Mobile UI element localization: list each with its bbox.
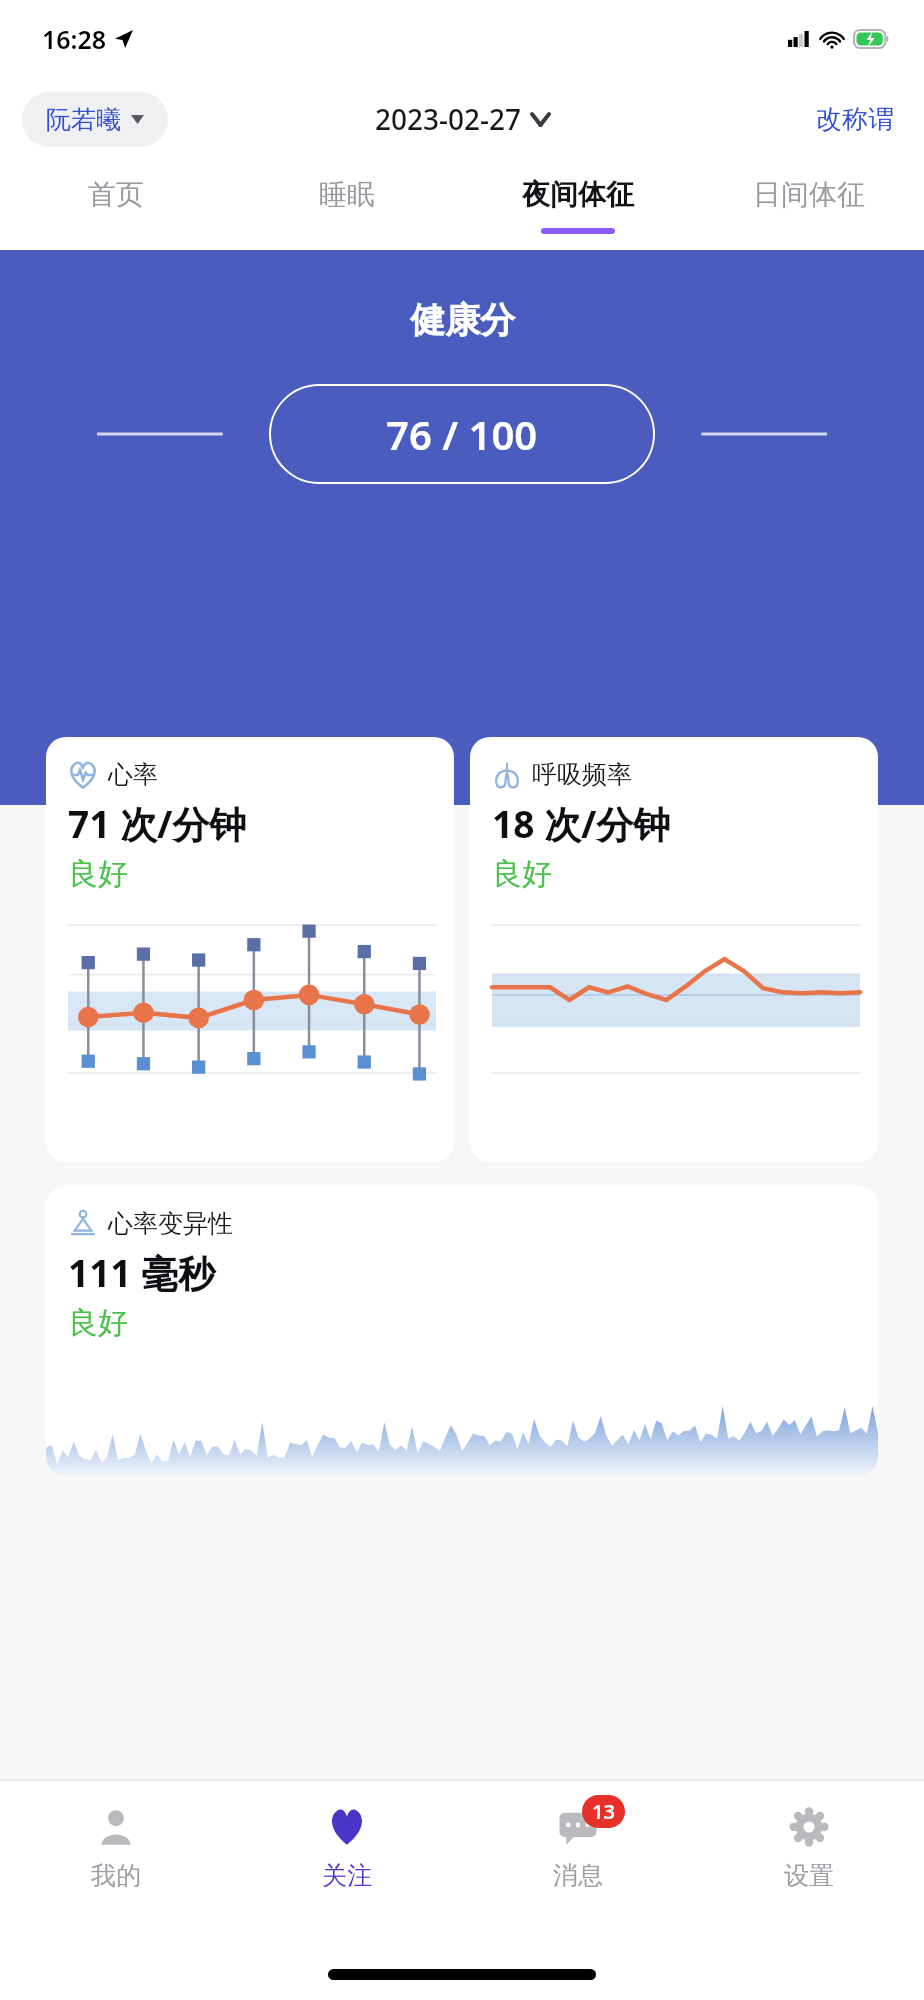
other: 消息 [557,1806,599,1848]
other: 我的 [95,1806,137,1848]
other: 关注 [326,1806,368,1848]
button[interactable]: 心率变异性 [46,1186,878,1476]
button[interactable]: 消息 [462,1780,693,1948]
staticText: 心率 [108,759,158,790]
staticText: 首页 [88,177,144,212]
button[interactable]: 阮若曦 [22,92,168,147]
staticText: 日间体征 [753,177,865,212]
staticText: 健康分 [410,298,515,342]
button[interactable]: 76 / 100 [269,384,655,484]
staticText: 良好 [68,855,128,893]
staticText: 我的 [91,1860,141,1891]
staticText: 2023-02-27 [375,100,522,138]
button[interactable]: 呼吸频率 [470,737,878,1162]
staticText: 71 次/分钟 [68,798,247,849]
button[interactable]: 夜间体征 [462,160,693,250]
button[interactable]: 首页 [0,160,231,250]
staticText: 呼吸频率 [532,759,632,790]
button[interactable]: 关注 [231,1780,462,1948]
button[interactable]: 我的 [0,1780,231,1948]
button[interactable]: 改称谓 [804,93,906,146]
staticText: 关注 [322,1860,372,1891]
staticText: 睡眠 [319,177,375,212]
button[interactable]: 2023-02-27 [365,92,559,146]
staticText: 13 [592,1798,615,1825]
staticText: 111 毫秒 [68,1247,216,1298]
other: 设置 [788,1806,830,1848]
staticText: 76 / 100 [386,407,538,461]
button[interactable]: 心率 [46,737,454,1162]
button[interactable]: 设置 [693,1780,924,1948]
staticText: 18 次/分钟 [492,798,671,849]
button[interactable]: 日间体征 [693,160,924,250]
staticText: 良好 [492,855,552,893]
staticText: 改称谓 [816,103,894,136]
staticText: 夜间体征 [522,177,634,212]
staticText: 阮若曦 [46,104,121,135]
staticText: 设置 [784,1860,834,1891]
staticText: 心率变异性 [108,1208,233,1239]
button[interactable]: 睡眠 [231,160,462,250]
staticText: 良好 [68,1304,128,1342]
staticText: 16:28 [42,22,107,56]
staticText: 消息 [553,1860,603,1891]
